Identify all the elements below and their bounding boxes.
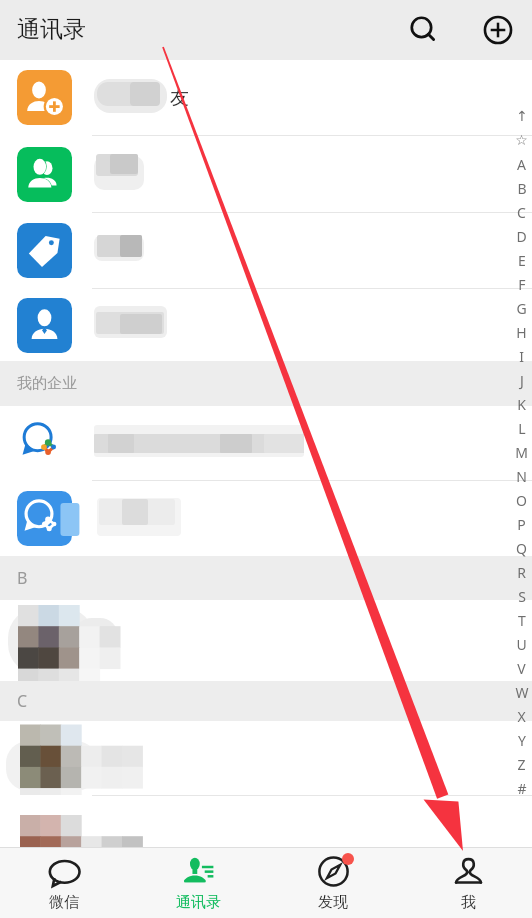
staticText: ☆ xyxy=(515,132,528,148)
staticText: ↑ xyxy=(516,108,528,124)
staticText: S xyxy=(518,587,526,606)
button[interactable] xyxy=(0,481,532,556)
staticText: H xyxy=(516,323,527,342)
staticText: 微信 xyxy=(49,893,79,912)
staticText: X xyxy=(517,707,526,726)
button[interactable]: 我 xyxy=(410,847,526,918)
staticText: E xyxy=(518,251,526,270)
staticText: 我的企业 xyxy=(17,374,77,393)
button[interactable]: 友 xyxy=(0,60,532,135)
staticText: V xyxy=(517,659,526,678)
button[interactable]: 发现 xyxy=(275,847,391,918)
staticText: G xyxy=(516,299,527,318)
button[interactable]: 微信 xyxy=(6,847,122,918)
staticText: 发现 xyxy=(318,893,348,912)
staticText: C xyxy=(517,203,526,222)
button[interactable] xyxy=(0,136,532,212)
button[interactable]: 通讯录 xyxy=(140,847,256,918)
staticText: M xyxy=(515,443,528,462)
staticText: 我 xyxy=(461,893,476,912)
staticText: 友 xyxy=(170,86,189,110)
staticText: J xyxy=(520,371,524,390)
staticText: W xyxy=(515,683,529,702)
staticText: # xyxy=(517,779,527,798)
staticText: L xyxy=(518,419,526,438)
staticText: A xyxy=(517,155,526,174)
staticText: Q xyxy=(516,539,527,558)
staticText: D xyxy=(516,227,527,246)
staticText: N xyxy=(516,467,527,486)
staticText: U xyxy=(516,635,527,654)
staticText: C xyxy=(17,690,28,712)
staticText: F xyxy=(518,275,526,294)
button[interactable]: Add xyxy=(474,6,522,54)
staticText: 通讯录 xyxy=(176,893,221,912)
staticText: R xyxy=(517,563,526,582)
button[interactable] xyxy=(0,721,532,795)
staticText: I xyxy=(519,347,524,366)
button[interactable] xyxy=(0,406,532,480)
staticText: Y xyxy=(518,731,526,750)
button[interactable] xyxy=(0,213,532,288)
staticText: Z xyxy=(517,755,526,774)
staticText: 通讯录 xyxy=(17,15,86,44)
staticText: B xyxy=(17,567,28,589)
staticText: T xyxy=(518,611,526,630)
staticText: B xyxy=(517,179,527,198)
button[interactable] xyxy=(0,796,532,847)
button[interactable] xyxy=(0,600,532,681)
staticText: K xyxy=(517,395,526,414)
button[interactable] xyxy=(0,289,532,361)
staticText: P xyxy=(517,515,526,534)
button[interactable]: Search xyxy=(399,6,447,54)
staticText: O xyxy=(516,491,527,510)
